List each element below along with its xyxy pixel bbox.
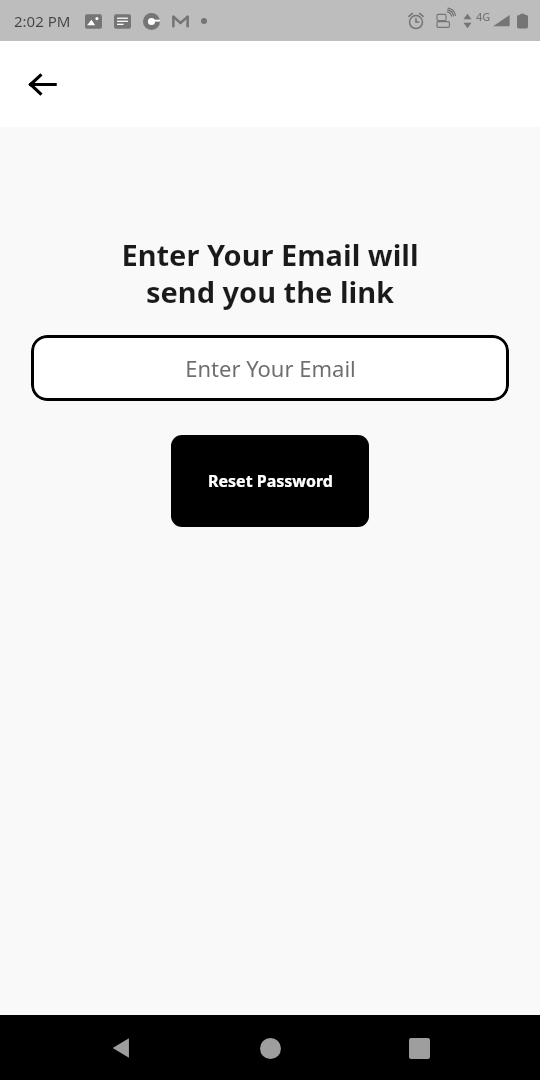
- button[interactable]: Back: [93, 1020, 149, 1076]
- staticText: Reset Password: [208, 470, 333, 492]
- button[interactable]: Recent apps: [391, 1020, 447, 1076]
- button[interactable]: Back: [18, 60, 66, 108]
- button[interactable]: Home: [242, 1020, 298, 1076]
- staticText: 4G: [476, 9, 491, 24]
- staticText: 2:02 PM: [14, 11, 71, 31]
- button[interactable]: Enter Your Email: [31, 335, 509, 401]
- button[interactable]: Reset Password: [171, 435, 369, 527]
- staticText: Enter Your Email: [185, 353, 356, 383]
- staticText: Enter Your Email will send you the link: [24, 235, 516, 312]
